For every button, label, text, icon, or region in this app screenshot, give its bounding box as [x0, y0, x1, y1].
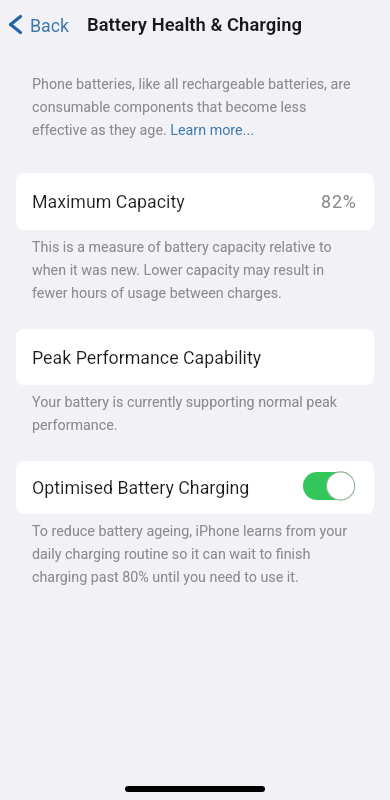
staticText: Battery Health & Charging	[87, 14, 302, 36]
button[interactable]: Peak Performance Capability	[16, 329, 374, 385]
staticText: 82%	[321, 191, 357, 212]
staticText: This is a measure of battery capacity re…	[32, 239, 358, 302]
staticText: To reduce battery ageing, iPhone learns …	[32, 523, 358, 586]
staticText: Back	[30, 15, 70, 36]
staticText: Optimised Battery Charging	[32, 477, 250, 498]
button[interactable]: Optimised Battery Charging	[16, 461, 374, 514]
button[interactable]: Back	[0, 14, 76, 35]
staticText: Your battery is currently supporting nor…	[32, 394, 358, 434]
staticText: Maximum Capacity	[32, 191, 185, 212]
button[interactable]: Optimised Battery Charging toggle	[303, 471, 355, 501]
staticText: Peak Performance Capability	[32, 347, 262, 368]
staticText: Phone batteries, like all rechargeable b…	[32, 76, 358, 139]
button[interactable]: Maximum Capacity	[16, 173, 374, 230]
